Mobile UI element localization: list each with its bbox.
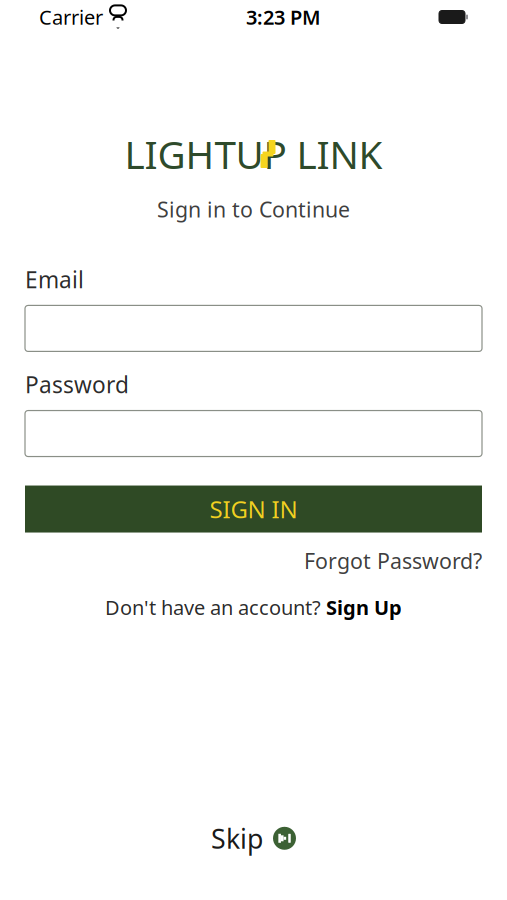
- staticText: Sign Up: [326, 594, 402, 620]
- staticText: Carrier: [39, 4, 103, 30]
- button[interactable]: [25, 305, 482, 351]
- staticText: Sign in to Continue: [157, 195, 350, 223]
- staticText: 3:23 PM: [246, 4, 321, 30]
- staticText: Forgot Password?: [304, 546, 482, 575]
- button[interactable]: [25, 410, 482, 456]
- staticText: Email: [25, 264, 84, 294]
- button[interactable]: Skip: [211, 821, 296, 856]
- staticText: LINK: [286, 128, 382, 180]
- staticText: Password: [25, 369, 129, 399]
- button[interactable]: SIGN IN: [25, 485, 482, 532]
- staticText: SIGN IN: [209, 493, 297, 525]
- button[interactable]: Don't have an account?: [105, 594, 402, 620]
- staticText: Don't have an account?: [105, 594, 326, 620]
- staticText: Skip: [211, 821, 263, 856]
- button[interactable]: Forgot Password?: [304, 546, 482, 575]
- staticText: LIGHTUP: [124, 128, 286, 180]
